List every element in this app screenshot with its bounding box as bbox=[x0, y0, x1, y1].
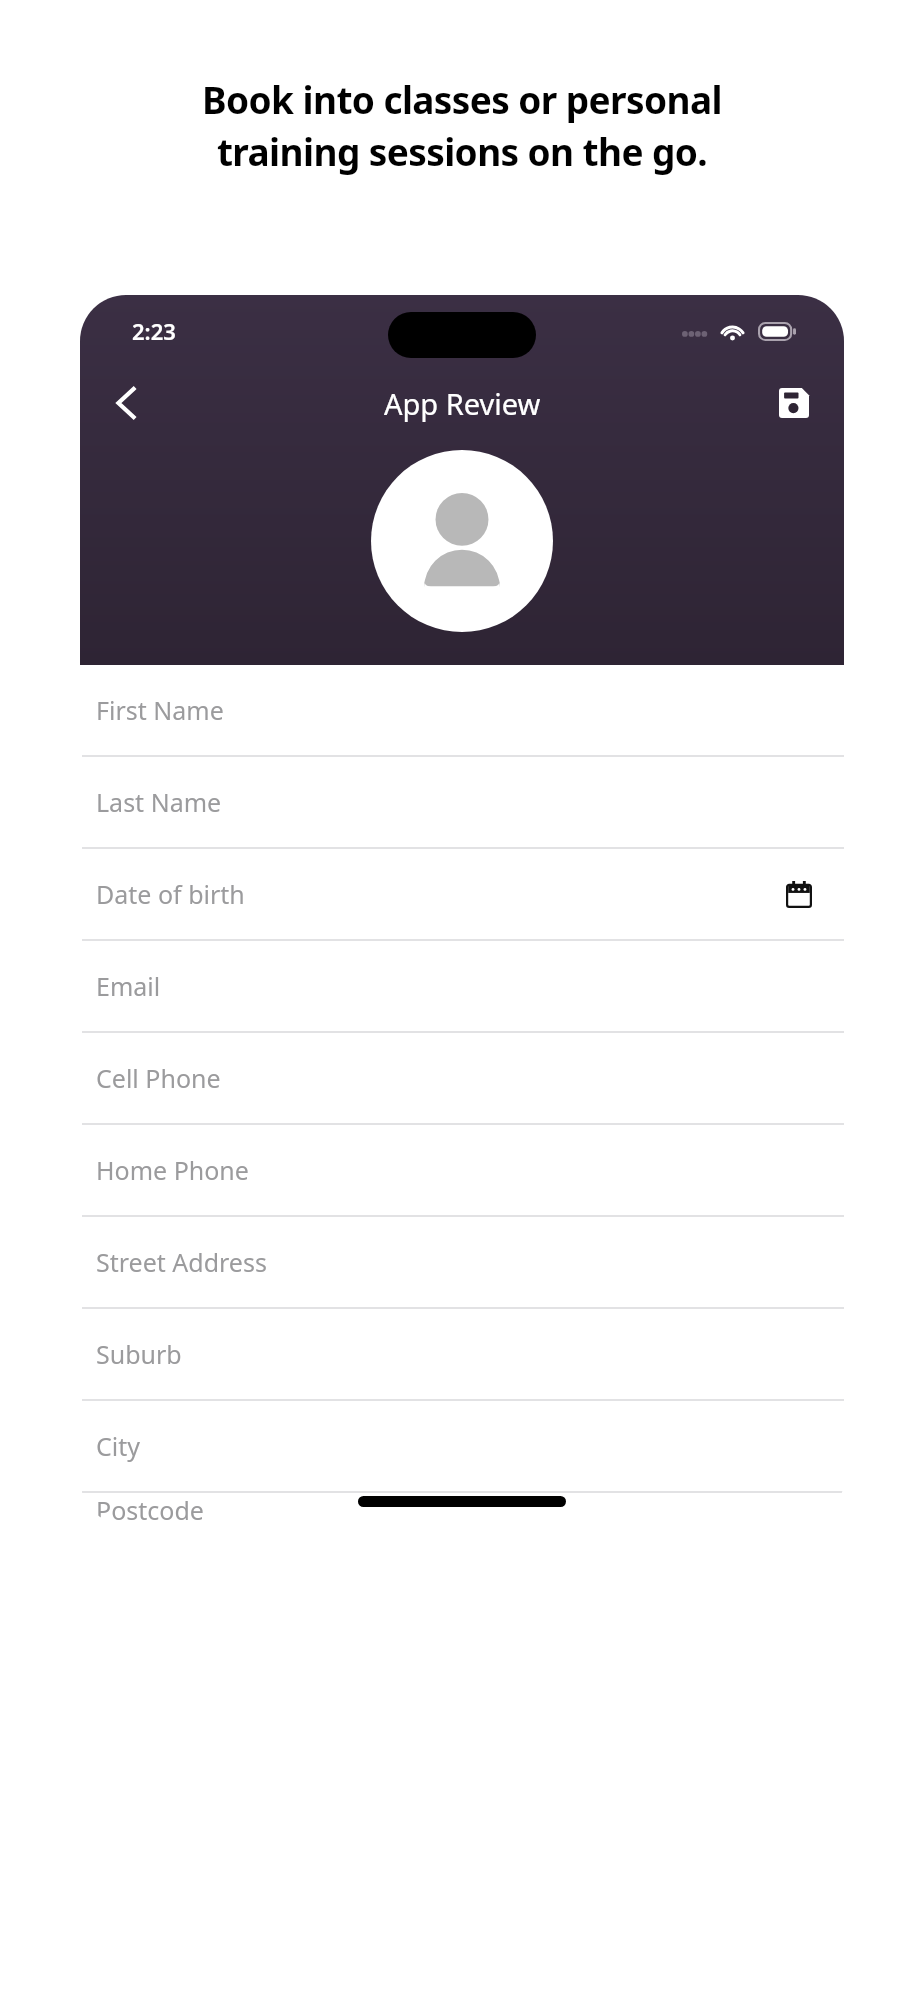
staticText: App Review bbox=[384, 384, 541, 423]
button[interactable]: Date of birth bbox=[80, 849, 844, 939]
staticText: Street Address bbox=[96, 1245, 267, 1279]
button[interactable]: Cell Phone bbox=[80, 1033, 844, 1123]
staticText: Date of birth bbox=[96, 877, 245, 911]
staticText: Last Name bbox=[96, 785, 222, 819]
staticText: Cell Phone bbox=[96, 1061, 221, 1095]
button[interactable]: City bbox=[80, 1401, 844, 1491]
button[interactable]: Profile photo bbox=[371, 450, 553, 632]
staticText: Home Phone bbox=[96, 1153, 249, 1187]
button[interactable]: Email bbox=[80, 941, 844, 1031]
staticText: Suburb bbox=[96, 1337, 182, 1371]
button[interactable]: Suburb bbox=[80, 1309, 844, 1399]
staticText: 2:23 bbox=[132, 316, 176, 346]
staticText: First Name bbox=[96, 693, 224, 727]
button[interactable]: Home Phone bbox=[80, 1125, 844, 1215]
button[interactable]: Back bbox=[98, 375, 154, 431]
staticText: Postcode bbox=[96, 1493, 204, 1525]
staticText: City bbox=[96, 1429, 141, 1463]
button[interactable]: Last Name bbox=[80, 757, 844, 847]
button[interactable]: Save bbox=[766, 375, 822, 431]
staticText: Email bbox=[96, 969, 161, 1003]
button[interactable]: First Name bbox=[80, 665, 844, 755]
button[interactable]: Street Address bbox=[80, 1217, 844, 1307]
button[interactable]: Pick date bbox=[776, 871, 822, 917]
button[interactable]: Postcode bbox=[80, 1493, 844, 1525]
staticText: Book into classes or personal training s… bbox=[24, 74, 900, 177]
